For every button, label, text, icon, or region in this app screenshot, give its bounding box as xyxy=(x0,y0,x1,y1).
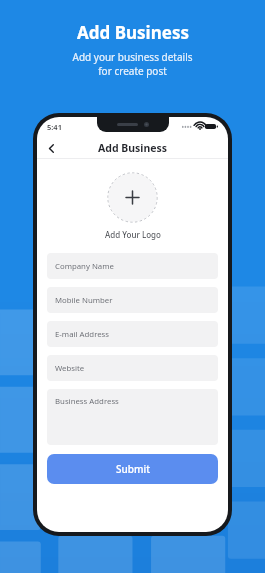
staticText: Add Your Logo xyxy=(105,229,161,240)
button[interactable]: Mobile Number xyxy=(47,287,218,313)
staticText: Add your business details for create pos… xyxy=(72,50,193,78)
staticText: Website xyxy=(55,363,85,374)
staticText: Add Business xyxy=(98,141,168,155)
staticText: Submit xyxy=(116,462,150,476)
button[interactable]: E-mail Address xyxy=(47,321,218,347)
staticText: Company Name xyxy=(55,261,114,272)
staticText: 5:41 xyxy=(47,122,62,132)
button[interactable]: Submit xyxy=(47,454,218,484)
button[interactable]: Business Address xyxy=(47,389,218,445)
staticText: E-mail Address xyxy=(55,329,110,340)
button[interactable]: Back xyxy=(41,138,61,158)
button[interactable]: Add Your Logo xyxy=(107,172,158,223)
staticText: Add Business xyxy=(77,21,189,44)
button[interactable]: Company Name xyxy=(47,253,218,279)
staticText: Mobile Number xyxy=(55,295,113,306)
button[interactable]: Website xyxy=(47,355,218,381)
staticText: Business Address xyxy=(55,396,119,407)
